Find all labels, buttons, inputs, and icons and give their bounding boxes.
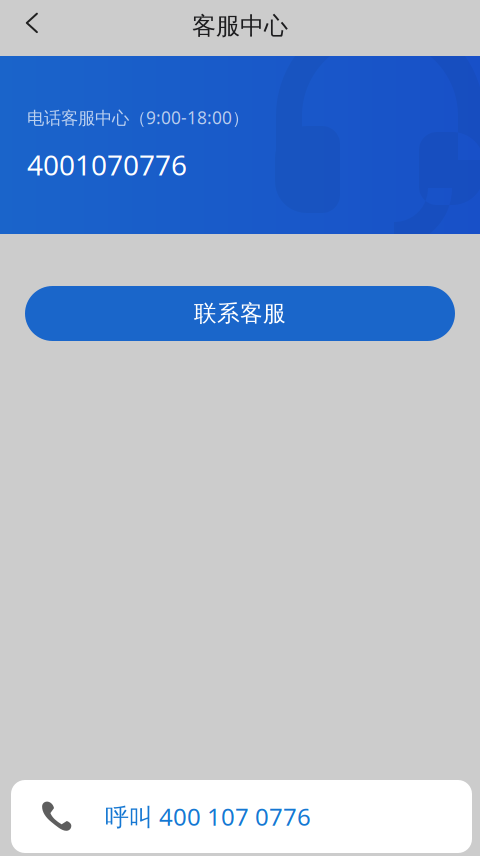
button[interactable]: 联系客服: [25, 286, 455, 341]
staticText: 呼叫 400 107 0776: [105, 801, 311, 832]
staticText: 4001070776: [27, 146, 187, 183]
staticText: 电话客服中心（9:00-18:00）: [27, 106, 249, 129]
staticText: 联系客服: [194, 300, 286, 327]
button[interactable]: Back: [10, 1, 54, 45]
staticText: 客服中心: [192, 11, 288, 41]
button[interactable]: 呼叫 400 107 0776: [11, 780, 472, 853]
